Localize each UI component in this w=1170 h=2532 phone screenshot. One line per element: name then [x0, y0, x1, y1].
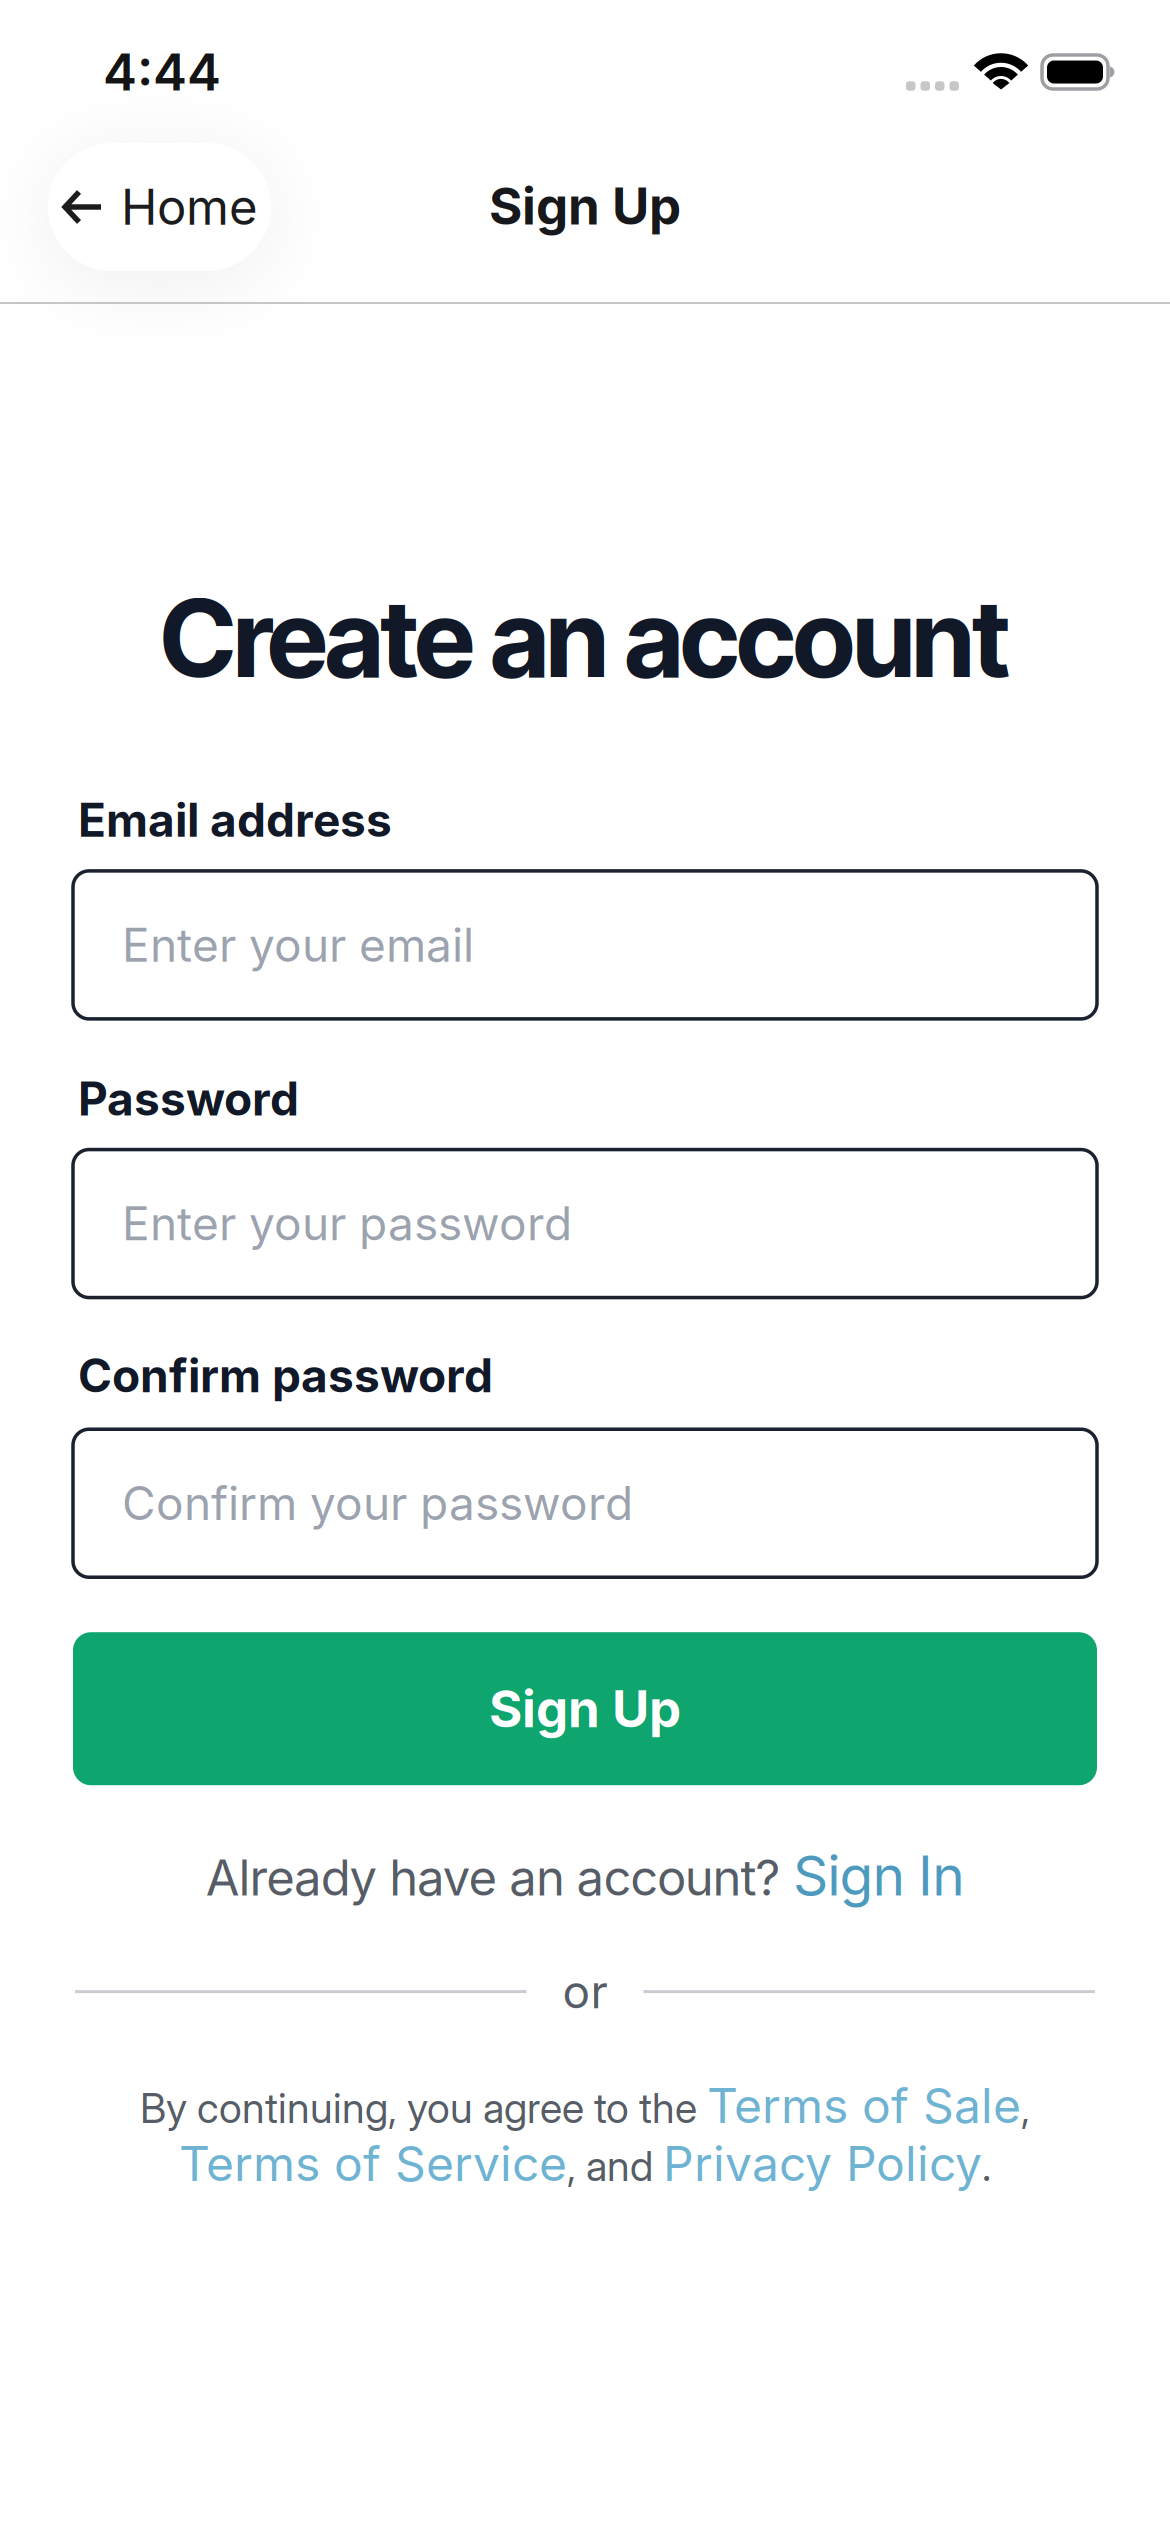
staticText: 4:44	[103, 41, 221, 103]
button[interactable]: Sign In	[793, 1842, 964, 1909]
staticText: Terms of Sale	[707, 2076, 1021, 2134]
staticText: ,	[1021, 2083, 1030, 2133]
button[interactable]: Enter your email	[73, 871, 1097, 1019]
staticText: Privacy Policy	[663, 2134, 982, 2193]
staticText: Confirm password	[78, 1348, 493, 1403]
staticText: By continuing, you agree to the	[140, 2083, 707, 2133]
staticText: .	[982, 2141, 991, 2191]
button[interactable]: Terms of Sale	[707, 2076, 1021, 2134]
staticText: Sign In	[793, 1842, 964, 1909]
staticText: Enter your email	[122, 917, 474, 973]
button[interactable]: Privacy Policy	[663, 2134, 982, 2193]
staticText: Email address	[78, 792, 392, 848]
staticText: , and	[567, 2141, 663, 2191]
staticText: Create an account	[160, 574, 1010, 702]
staticText: Sign Up	[489, 175, 681, 237]
button[interactable]: Enter your password	[73, 1150, 1097, 1298]
staticText: Terms of Service	[179, 2134, 567, 2193]
staticText: Sign Up	[489, 1678, 681, 1740]
staticText: Confirm your password	[122, 1475, 633, 1531]
button[interactable]: Confirm your password	[73, 1429, 1097, 1577]
button[interactable]: Sign Up	[0, 1632, 1170, 1785]
button[interactable]: Terms of Service	[179, 2134, 567, 2193]
staticText: Home	[121, 177, 258, 237]
button[interactable]: Home	[48, 143, 271, 271]
staticText: Enter your password	[122, 1196, 572, 1251]
staticText: or	[562, 1964, 607, 2019]
staticText: Already have an account?	[206, 1848, 793, 1907]
staticText: Password	[78, 1071, 299, 1127]
